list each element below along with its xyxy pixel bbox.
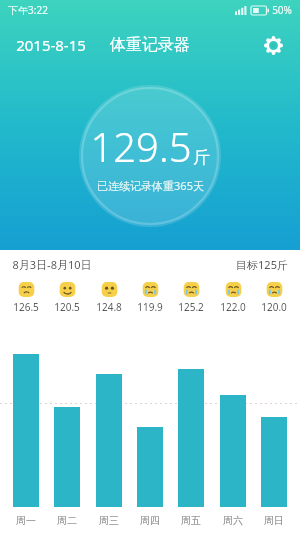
staticText: 目标125斤 (236, 257, 288, 272)
staticText: 周日 (264, 514, 284, 527)
staticText: 124.8 (96, 300, 122, 314)
staticText: 周一 (16, 514, 36, 527)
staticText: 周六 (223, 514, 243, 527)
button[interactable]: 129.5 (79, 85, 221, 227)
staticText: 已连续记录体重365天 (97, 178, 204, 193)
staticText: 50% (272, 3, 292, 17)
button[interactable]: Settings (258, 30, 288, 60)
staticText: 125.2 (178, 300, 204, 314)
button[interactable]: 2015-8-15 (14, 33, 88, 57)
staticText: 8月3日-8月10日 (12, 257, 92, 272)
staticText: 120.0 (261, 300, 287, 314)
staticText: 126.5 (13, 300, 39, 314)
staticText: 122.0 (220, 300, 246, 314)
staticText: 2015-8-15 (16, 35, 86, 55)
staticText: 体重记录器 (110, 35, 190, 55)
staticText: 119.9 (137, 300, 163, 314)
staticText: 周二 (57, 514, 77, 527)
staticText: 周四 (140, 514, 160, 527)
staticText: 周三 (99, 514, 119, 527)
staticText: 周五 (181, 514, 201, 527)
staticText: 斤 (193, 147, 210, 168)
staticText: 120.5 (54, 300, 80, 314)
staticText: 129.5 (90, 119, 192, 173)
staticText: 下午3:22 (8, 3, 48, 17)
